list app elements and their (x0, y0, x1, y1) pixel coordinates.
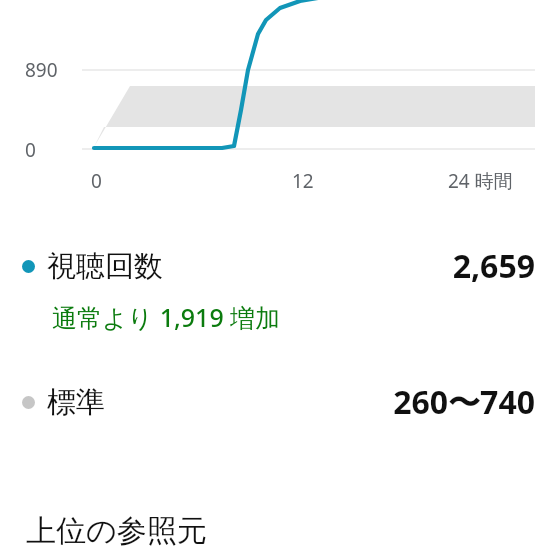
staticText: 視聴回数 (47, 248, 163, 285)
button[interactable]: 標準 (0, 374, 560, 430)
staticText: 260〜740 (393, 380, 535, 424)
button[interactable]: 視聴回数 (0, 236, 560, 290)
staticText: 通常より 1,919 増加 (52, 300, 281, 334)
staticText: 24 時間 (448, 168, 513, 194)
staticText: 0 (25, 137, 36, 163)
staticText: 12 (292, 168, 314, 194)
staticText: 2,659 (452, 244, 535, 288)
staticText: 上位の参照元 (26, 512, 207, 550)
staticText: 0 (91, 168, 102, 194)
staticText: 標準 (47, 384, 105, 421)
staticText: 890 (25, 57, 58, 83)
